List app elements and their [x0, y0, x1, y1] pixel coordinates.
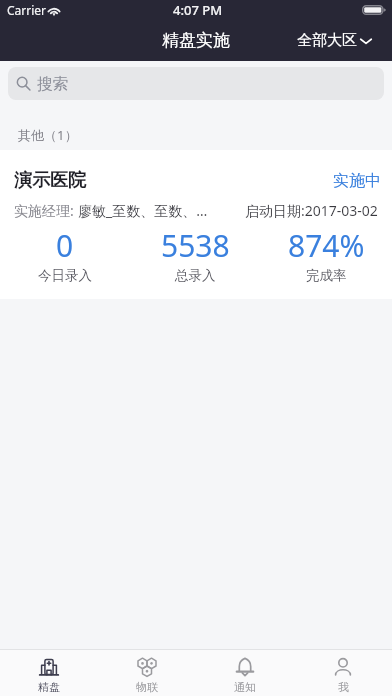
staticText: 实施中 — [333, 171, 381, 191]
staticText: 4:07 PM — [173, 1, 223, 19]
staticText: 0 — [56, 225, 74, 266]
button[interactable]: 演示医院 — [0, 150, 392, 299]
staticText: 精盘 — [38, 680, 60, 694]
staticText: 演示医院 — [14, 169, 86, 192]
button[interactable]: 精盘 — [0, 650, 98, 696]
staticText: 总录入 — [175, 267, 216, 284]
staticText: 物联 — [136, 680, 158, 694]
staticText: 5538 — [161, 225, 230, 266]
staticText: 精盘实施 — [162, 30, 230, 51]
staticText: 全部大区 — [297, 31, 357, 50]
staticText: Carrier — [7, 2, 47, 18]
staticText: 我 — [338, 680, 349, 694]
staticText: 实施经理: — [14, 201, 78, 220]
button[interactable]: 通知 — [196, 650, 294, 696]
button[interactable]: 物联 — [98, 650, 196, 696]
staticText: 搜索 — [37, 74, 68, 94]
staticText: 874% — [288, 225, 365, 266]
button[interactable]: 全部大区 — [297, 31, 372, 50]
button[interactable]: 我 — [294, 650, 392, 696]
staticText: 完成率 — [306, 267, 347, 284]
staticText: 启动日期:2017-03-02 — [245, 201, 378, 220]
staticText: 通知 — [234, 680, 256, 694]
button[interactable]: 搜索 — [8, 67, 384, 100]
staticText: 其他（1） — [18, 126, 78, 144]
staticText: 廖敏_至数、至数、… — [78, 201, 208, 220]
staticText: 今日录入 — [38, 267, 92, 284]
